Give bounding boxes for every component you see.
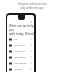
button[interactable]: Contact us bbox=[7, 48, 34, 54]
button[interactable]: Pay bbox=[7, 36, 34, 42]
staticText: only within the app bbox=[20, 6, 44, 10]
staticText: Lockout bbox=[14, 68, 23, 71]
staticText: Request cookies access bbox=[18, 2, 47, 6]
button[interactable]: Lockout bbox=[7, 66, 34, 72]
button[interactable]: Jump start bbox=[7, 42, 34, 48]
staticText: Pay bbox=[14, 38, 18, 41]
staticText: Contact us bbox=[14, 50, 25, 53]
button[interactable]: Fuel delivery bbox=[7, 60, 34, 66]
staticText: Jump start bbox=[14, 44, 25, 47]
staticText: What can we help you with today, Mona? bbox=[9, 24, 34, 36]
staticText: Fuel delivery bbox=[14, 62, 27, 65]
staticText: Tow charge bbox=[14, 56, 26, 59]
button[interactable]: Tow charge bbox=[7, 54, 34, 60]
